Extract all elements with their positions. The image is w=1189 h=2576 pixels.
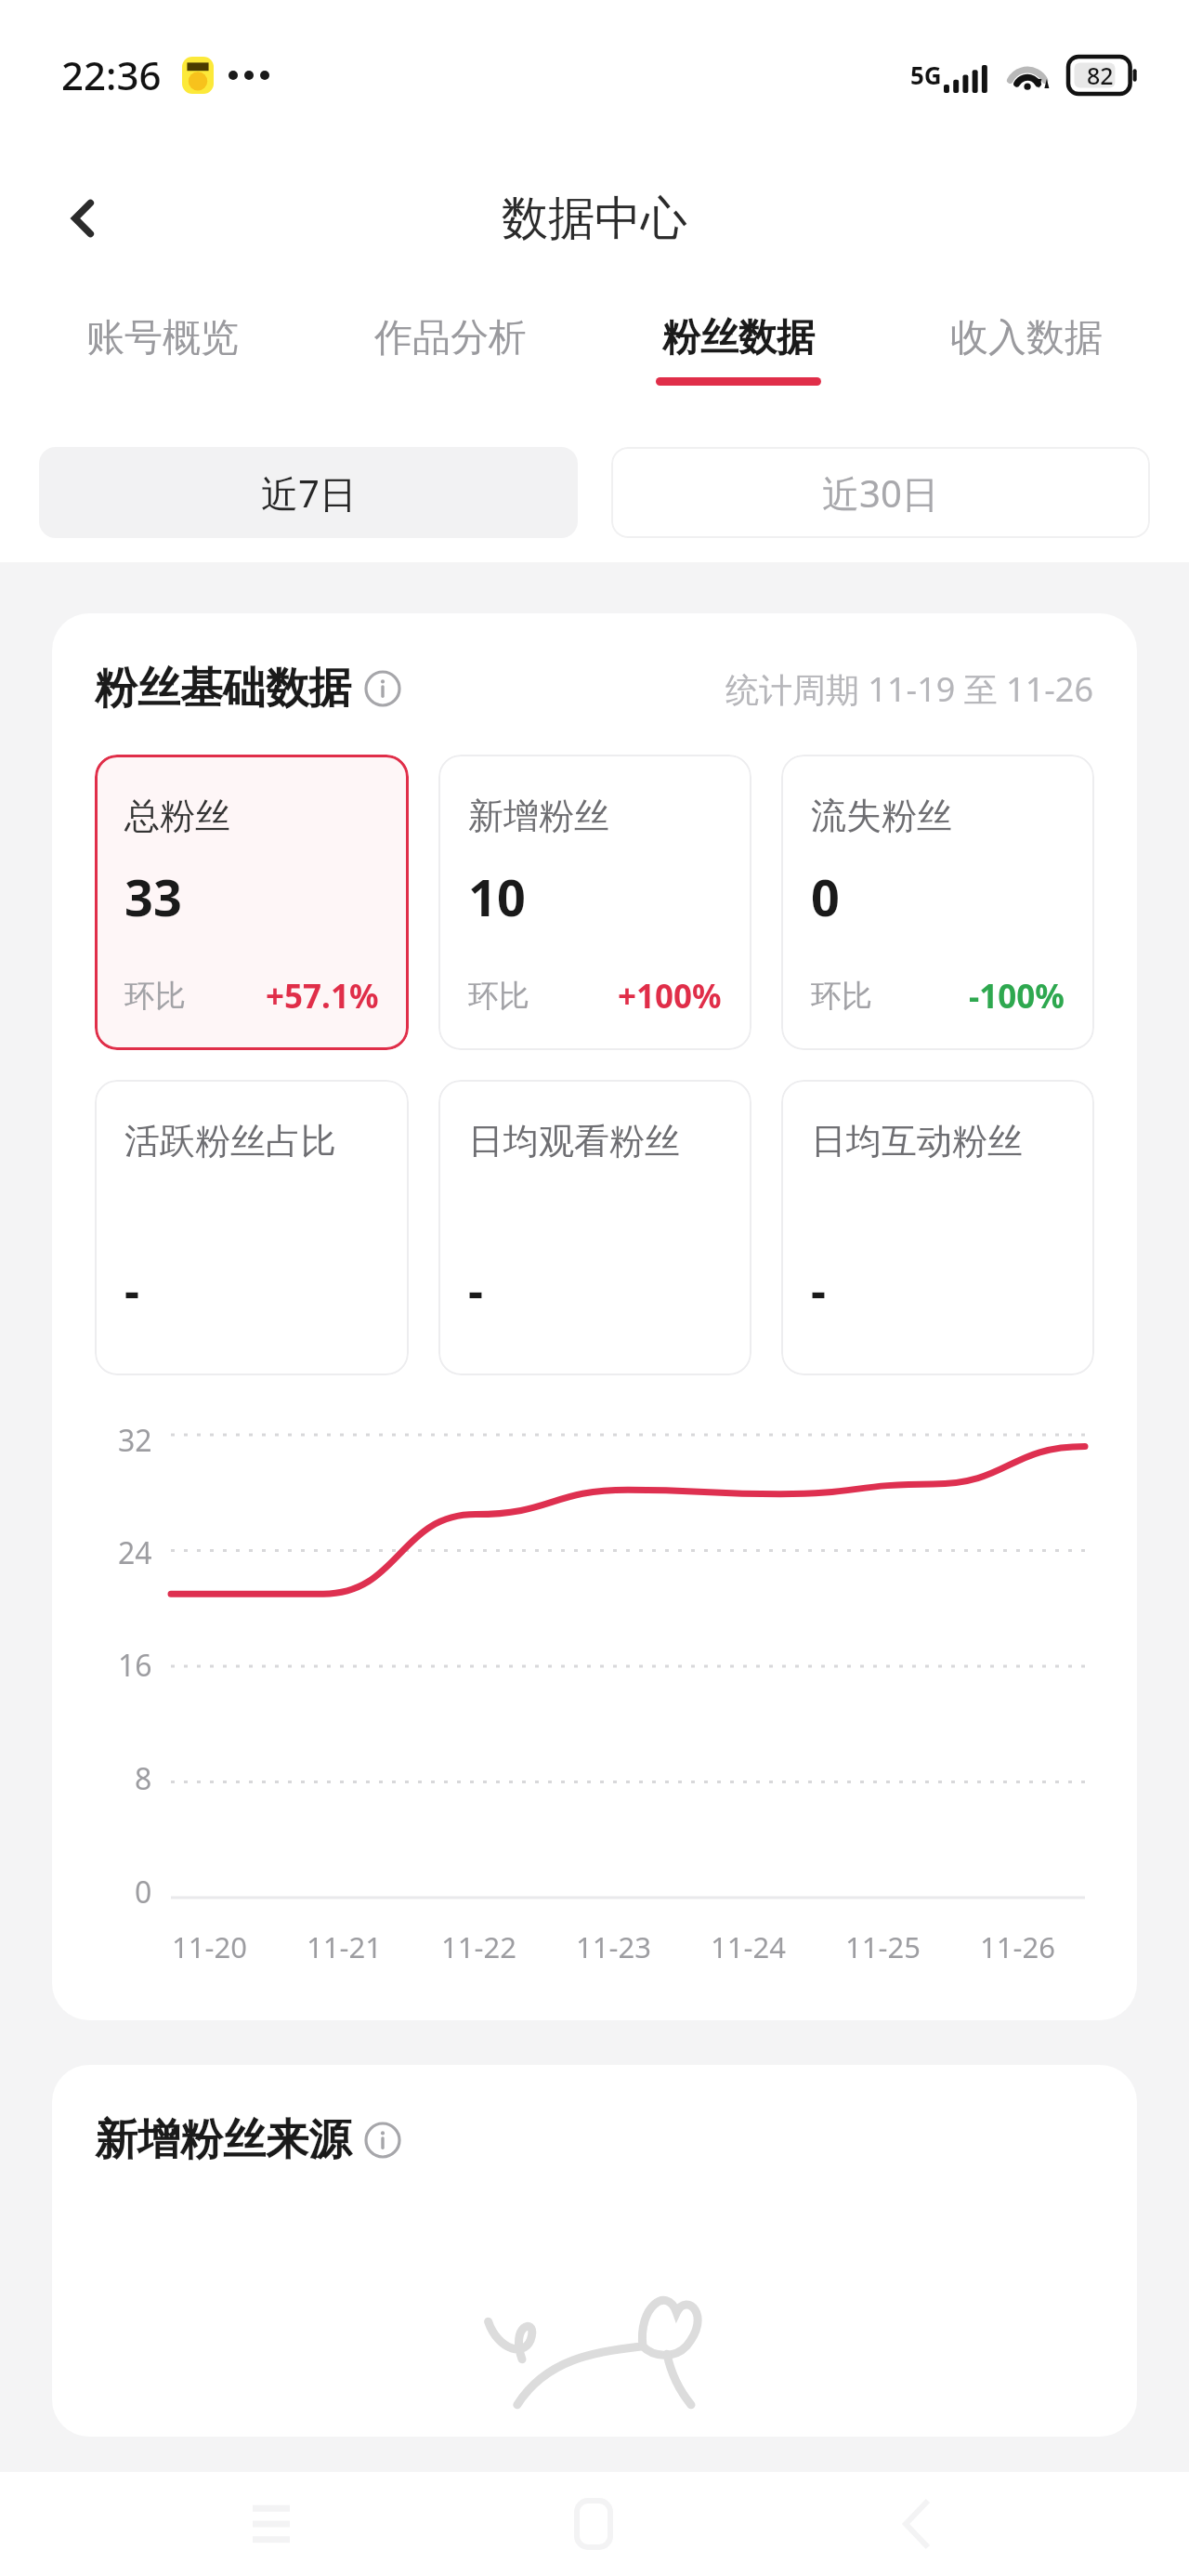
staticText: 统计周期 11-19 至 11-26 bbox=[725, 666, 1094, 712]
staticText: 环比 bbox=[124, 977, 186, 1016]
button[interactable]: 日均观看粉丝 bbox=[438, 1080, 751, 1375]
staticText: 16 bbox=[118, 1645, 152, 1686]
staticText: - bbox=[811, 1258, 826, 1321]
button[interactable]: 活跃粉丝占比 bbox=[95, 1080, 409, 1375]
button[interactable]: 流失粉丝 bbox=[781, 755, 1094, 1050]
staticText: 0 bbox=[811, 862, 840, 931]
staticText: 新增粉丝来源 bbox=[95, 2113, 351, 2167]
button[interactable]: 说明 bbox=[364, 2122, 401, 2159]
staticText: 11-25 bbox=[845, 1927, 921, 1966]
staticText: 5G bbox=[910, 59, 942, 91]
button[interactable]: 粉丝数据 bbox=[594, 288, 882, 423]
staticText: 日均观看粉丝 bbox=[468, 1119, 680, 1163]
staticText: 33 bbox=[124, 862, 182, 931]
staticText: +100% bbox=[618, 974, 722, 1019]
button[interactable]: 总粉丝 bbox=[95, 755, 409, 1050]
button[interactable]: 近7日 bbox=[39, 447, 578, 538]
staticText: 11-21 bbox=[307, 1927, 382, 1966]
button[interactable]: 日均互动粉丝 bbox=[781, 1080, 1094, 1375]
button[interactable]: Home bbox=[542, 2473, 645, 2575]
staticText: 流失粉丝 bbox=[811, 794, 952, 838]
staticText: 粉丝数据 bbox=[662, 314, 815, 362]
staticText: 日均互动粉丝 bbox=[811, 1119, 1023, 1163]
staticText: 22:36 bbox=[61, 48, 162, 101]
staticText: 数据中心 bbox=[502, 190, 687, 248]
staticText: 近30日 bbox=[822, 467, 939, 519]
staticText: 24 bbox=[118, 1532, 152, 1573]
staticText: 32 bbox=[118, 1420, 152, 1461]
staticText: 11-23 bbox=[576, 1927, 651, 1966]
staticText: 10 bbox=[468, 862, 526, 931]
button[interactable]: 收入数据 bbox=[882, 288, 1170, 423]
staticText: 新增粉丝 bbox=[468, 794, 609, 838]
button[interactable]: 作品分析 bbox=[307, 288, 594, 423]
staticText: 82 bbox=[1087, 59, 1114, 91]
staticText: 作品分析 bbox=[374, 314, 527, 362]
staticText: 0 bbox=[135, 1872, 152, 1912]
staticText: - bbox=[124, 1258, 139, 1321]
staticText: 11-24 bbox=[711, 1927, 786, 1966]
button[interactable]: 说明 bbox=[364, 670, 401, 707]
staticText: +57.1% bbox=[266, 974, 379, 1019]
staticText: 8 bbox=[135, 1758, 152, 1799]
button[interactable]: 近30日 bbox=[611, 447, 1150, 538]
staticText: 账号概览 bbox=[86, 314, 239, 362]
button[interactable]: Back bbox=[46, 181, 121, 256]
button[interactable]: 新增粉丝 bbox=[438, 755, 751, 1050]
staticText: 活跃粉丝占比 bbox=[124, 1119, 336, 1163]
staticText: 收入数据 bbox=[950, 314, 1103, 362]
staticText: 粉丝基础数据 bbox=[95, 662, 351, 716]
button[interactable]: 账号概览 bbox=[19, 288, 307, 423]
staticText: 总粉丝 bbox=[124, 794, 230, 838]
staticText: 11-26 bbox=[980, 1927, 1055, 1966]
staticText: 环比 bbox=[468, 977, 529, 1016]
staticText: -100% bbox=[969, 974, 1065, 1019]
staticText: 11-20 bbox=[172, 1927, 247, 1966]
staticText: 近7日 bbox=[261, 467, 357, 519]
staticText: - bbox=[468, 1258, 483, 1321]
staticText: 11-22 bbox=[441, 1927, 516, 1966]
staticText: 环比 bbox=[811, 977, 872, 1016]
